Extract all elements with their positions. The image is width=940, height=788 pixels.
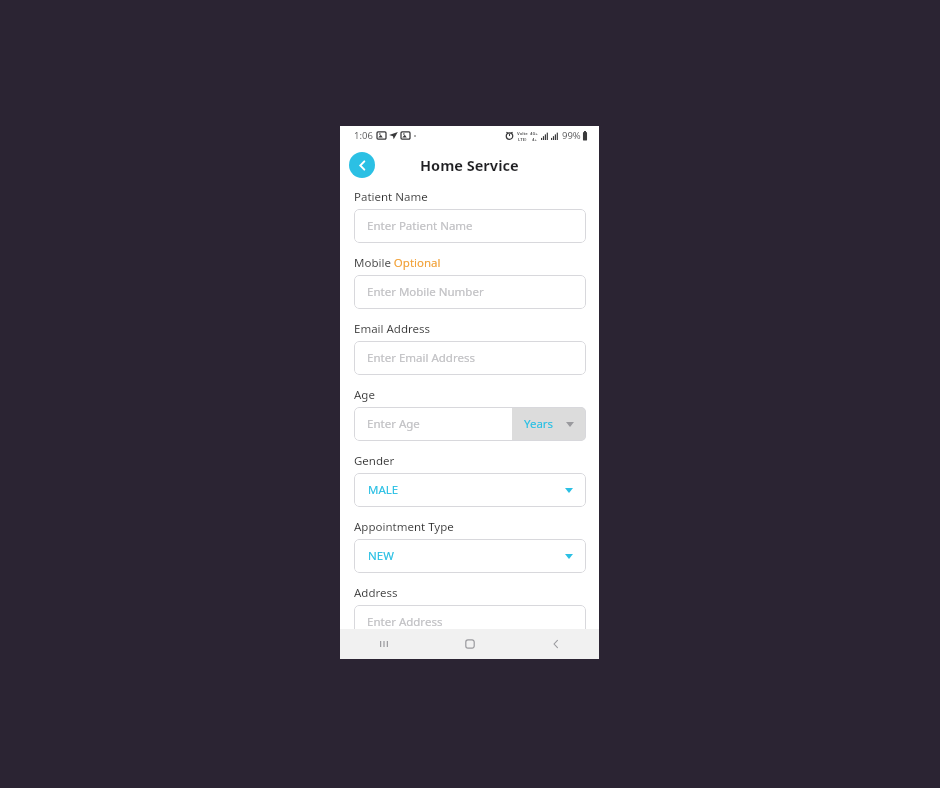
button[interactable]: Enter Patient Name bbox=[354, 209, 586, 243]
staticText: Enter Patient Name bbox=[367, 218, 473, 234]
staticText: Volte bbox=[517, 131, 528, 137]
staticText: NEW bbox=[368, 548, 394, 564]
staticText: Email Address bbox=[354, 321, 431, 337]
button[interactable]: MALE bbox=[354, 473, 586, 507]
staticText: Mobile Optional bbox=[354, 255, 441, 271]
button[interactable]: Enter Mobile Number bbox=[354, 275, 586, 309]
staticText: Years bbox=[524, 416, 554, 432]
staticText: Home Service bbox=[420, 155, 519, 175]
button[interactable]: Enter Email Address bbox=[354, 341, 586, 375]
staticText: Age bbox=[354, 387, 375, 403]
staticText: Enter Mobile Number bbox=[367, 284, 484, 300]
button[interactable]: Enter Address bbox=[354, 605, 586, 639]
staticText: Appointment Type bbox=[354, 519, 454, 535]
button[interactable]: NEW bbox=[354, 539, 586, 573]
button[interactable]: Home bbox=[427, 629, 513, 659]
staticText: LTE) bbox=[518, 137, 527, 141]
button[interactable]: Years bbox=[512, 407, 586, 441]
staticText: Enter Age bbox=[367, 416, 420, 432]
button[interactable]: Enter Age bbox=[354, 407, 512, 441]
staticText: Gender bbox=[354, 453, 395, 469]
staticText: 99% bbox=[562, 129, 581, 142]
button[interactable]: Back bbox=[349, 152, 375, 178]
staticText: Enter Address bbox=[367, 614, 443, 630]
staticText: 1:06 bbox=[354, 129, 373, 142]
staticText: Enter Email Address bbox=[367, 350, 475, 366]
staticText: Address bbox=[354, 585, 398, 601]
staticText: Patient Name bbox=[354, 189, 428, 205]
staticText: 4G+ bbox=[530, 131, 538, 137]
staticText: 4+ bbox=[532, 137, 537, 141]
button[interactable]: Back bbox=[513, 629, 599, 659]
button[interactable]: Recent apps bbox=[340, 629, 427, 659]
staticText: MALE bbox=[368, 482, 399, 498]
